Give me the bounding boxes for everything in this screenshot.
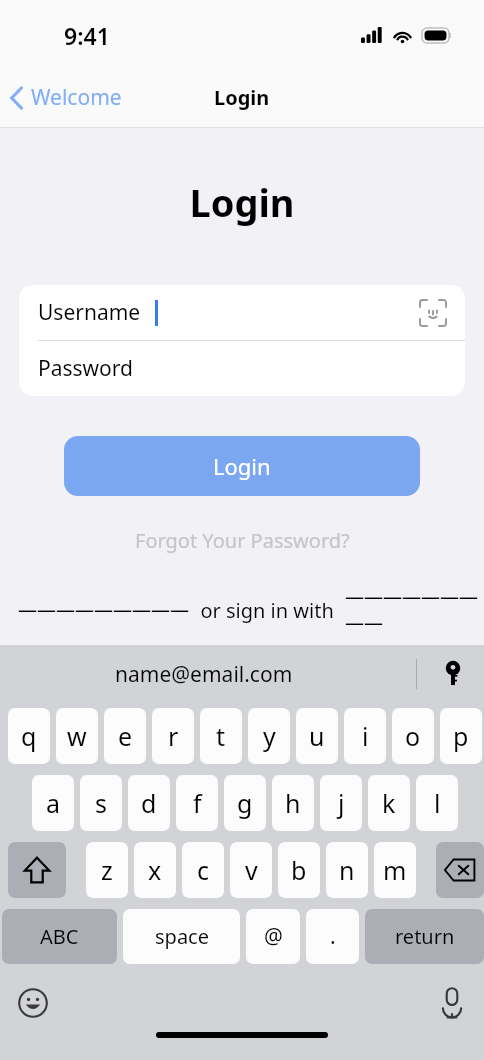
staticText: w xyxy=(67,719,87,753)
staticText: Forgot Your Password? xyxy=(135,527,350,554)
button[interactable]: Username xyxy=(19,285,465,340)
staticText: o xyxy=(405,719,421,753)
staticText: return xyxy=(395,923,455,950)
button[interactable]: u xyxy=(296,708,338,764)
staticText: p xyxy=(453,719,469,753)
button[interactable]: w xyxy=(56,708,98,764)
staticText: Login xyxy=(214,84,270,111)
staticText: ————————— xyxy=(18,597,190,623)
button[interactable]: b xyxy=(278,842,320,898)
staticText: t xyxy=(216,719,226,753)
staticText: q xyxy=(21,719,37,753)
staticText: Login xyxy=(213,451,271,481)
staticText: i xyxy=(362,719,369,753)
button[interactable]: space xyxy=(123,909,240,964)
button[interactable]: d xyxy=(128,775,170,831)
staticText: space xyxy=(155,923,209,950)
button[interactable]: m xyxy=(374,842,416,898)
staticText: Password xyxy=(38,354,133,383)
button[interactable]: return xyxy=(365,909,484,964)
staticText: Welcome xyxy=(31,83,122,112)
button[interactable]: q xyxy=(8,708,50,764)
staticText: d xyxy=(141,786,157,820)
staticText: j xyxy=(338,786,345,820)
staticText: l xyxy=(434,786,441,820)
button[interactable]: n xyxy=(326,842,368,898)
button[interactable]: a xyxy=(32,775,74,831)
button[interactable]: h xyxy=(272,775,314,831)
staticText: or sign in with xyxy=(190,597,345,624)
button[interactable]: . xyxy=(306,909,359,964)
staticText: g xyxy=(237,786,253,820)
button[interactable]: e xyxy=(104,708,146,764)
staticText: b xyxy=(291,853,307,887)
button[interactable]: f xyxy=(176,775,218,831)
button[interactable]: Password xyxy=(19,341,465,396)
button[interactable]: x xyxy=(134,842,176,898)
staticText: a xyxy=(46,786,61,820)
staticText: x xyxy=(148,853,162,887)
staticText: . xyxy=(330,922,336,951)
button[interactable]: Face ID xyxy=(420,300,446,326)
button[interactable]: Shift xyxy=(8,842,66,898)
button[interactable]: Backspace xyxy=(436,842,484,898)
button[interactable]: v xyxy=(230,842,272,898)
staticText: u xyxy=(309,719,325,753)
staticText: k xyxy=(382,786,396,820)
staticText: @ xyxy=(264,922,283,951)
button[interactable]: s xyxy=(80,775,122,831)
button[interactable]: c xyxy=(182,842,224,898)
staticText: z xyxy=(101,853,113,887)
button[interactable]: name@email.com xyxy=(115,660,293,689)
button[interactable]: r xyxy=(152,708,194,764)
staticText: e xyxy=(118,719,133,753)
button[interactable]: p xyxy=(440,708,482,764)
staticText: ABC xyxy=(40,923,79,950)
staticText: c xyxy=(197,853,210,887)
staticText: h xyxy=(285,786,301,820)
staticText: ————————— xyxy=(345,584,484,636)
button[interactable]: t xyxy=(200,708,242,764)
staticText: Login xyxy=(0,176,484,228)
staticText: Username xyxy=(38,298,141,327)
button[interactable]: Dictation xyxy=(440,987,464,1019)
button[interactable]: Emoji xyxy=(18,988,48,1018)
button[interactable]: i xyxy=(344,708,386,764)
button[interactable]: g xyxy=(224,775,266,831)
staticText: s xyxy=(95,786,107,820)
staticText: r xyxy=(168,719,179,753)
staticText: y xyxy=(263,719,276,753)
button[interactable]: Welcome xyxy=(0,77,134,118)
button[interactable]: k xyxy=(368,775,410,831)
button[interactable]: l xyxy=(416,775,458,831)
staticText: 9:41 xyxy=(64,20,110,51)
button[interactable]: ABC xyxy=(2,909,117,964)
button[interactable]: Login xyxy=(64,436,420,496)
button[interactable]: @ xyxy=(246,909,300,964)
button[interactable]: j xyxy=(320,775,362,831)
button[interactable]: z xyxy=(86,842,128,898)
staticText: f xyxy=(193,786,202,820)
button[interactable]: Forgot Your Password? xyxy=(0,521,484,560)
button[interactable]: o xyxy=(392,708,434,764)
button[interactable]: y xyxy=(248,708,290,764)
staticText: n xyxy=(339,853,355,887)
button[interactable]: Passwords xyxy=(442,660,464,688)
staticText: m xyxy=(383,853,407,887)
staticText: v xyxy=(245,853,258,887)
